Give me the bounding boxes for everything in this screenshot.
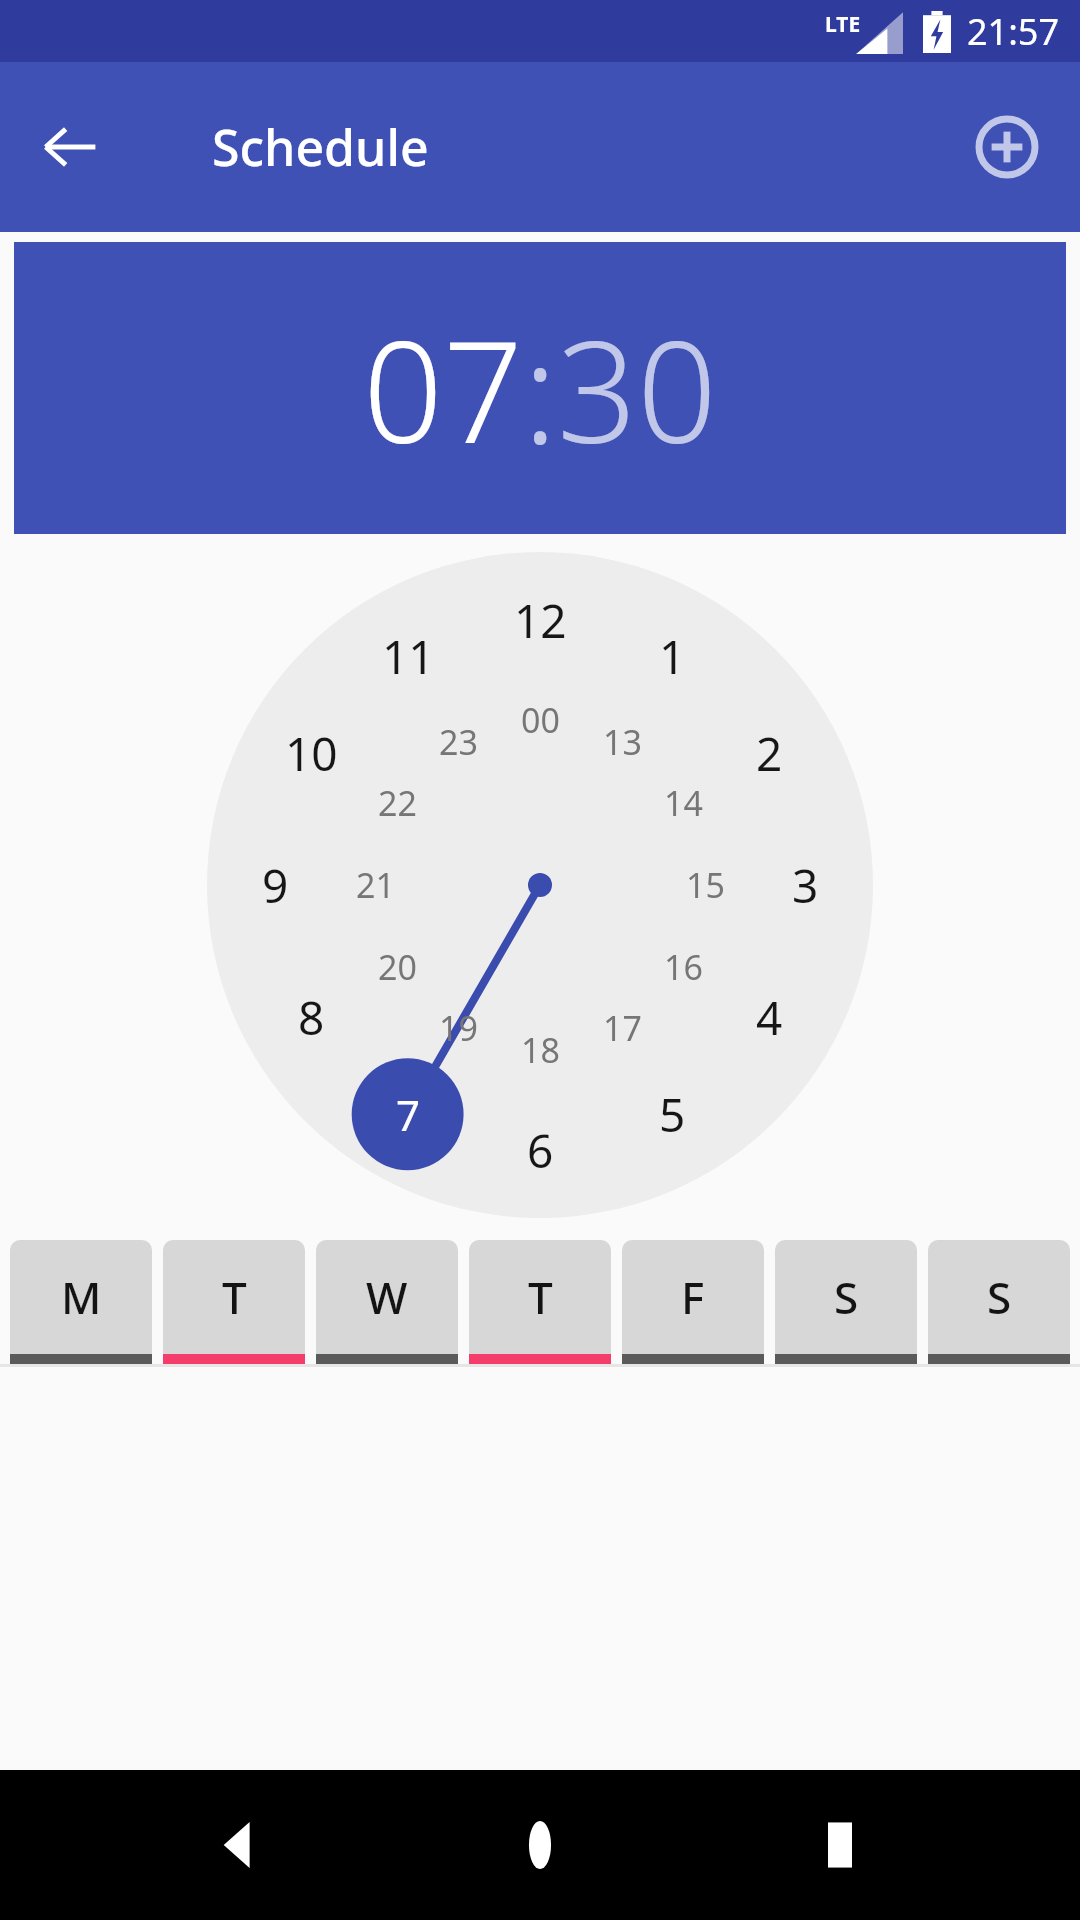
staticText: 2 [756, 722, 783, 785]
staticText: 12 [514, 589, 567, 652]
staticText: T [528, 1267, 553, 1327]
staticText: 5 [659, 1083, 686, 1146]
staticText: 11 [382, 625, 435, 688]
staticText: 18 [521, 1027, 560, 1073]
staticText: 6 [527, 1119, 554, 1182]
button[interactable]: S [928, 1240, 1070, 1364]
staticText: 23 [439, 719, 478, 765]
staticText: 13 [603, 719, 642, 765]
staticText: LTE [825, 10, 861, 39]
staticText: 3 [792, 854, 819, 917]
button[interactable]: Back [30, 107, 110, 187]
button[interactable]: T [163, 1240, 305, 1364]
staticText: 16 [664, 944, 703, 990]
staticText: 7 [396, 1086, 421, 1143]
button[interactable]: F [622, 1240, 764, 1364]
button[interactable]: T [469, 1240, 611, 1364]
button[interactable]: Back [180, 1785, 300, 1905]
staticText: 1 [659, 625, 686, 688]
staticText: 4 [756, 986, 783, 1049]
staticText: 15 [686, 862, 725, 908]
button[interactable]: M [10, 1240, 152, 1364]
button[interactable]: W [316, 1240, 458, 1364]
button[interactable]: 07:30 [14, 242, 1066, 534]
staticText: T [222, 1267, 247, 1327]
staticText: M [61, 1267, 102, 1327]
staticText: F [681, 1267, 705, 1327]
button[interactable]: S [775, 1240, 917, 1364]
staticText: 21:57 [967, 7, 1060, 56]
button[interactable]: Add schedule [964, 104, 1050, 190]
staticText: 22 [378, 780, 417, 826]
button[interactable]: Recent apps [780, 1785, 900, 1905]
staticText: 20 [378, 944, 417, 990]
staticText: 07:30 [363, 293, 717, 484]
staticText: 8 [298, 986, 325, 1049]
staticText: Schedule [212, 113, 429, 181]
staticText: S [834, 1267, 859, 1327]
staticText: 21 [356, 862, 395, 908]
staticText: 14 [664, 780, 703, 826]
staticText: W [366, 1267, 408, 1327]
staticText: 17 [603, 1005, 642, 1051]
staticText: 9 [262, 854, 289, 917]
staticText: 10 [285, 722, 338, 785]
button[interactable]: Home [480, 1785, 600, 1905]
staticText: 00 [521, 697, 560, 743]
staticText: S [987, 1267, 1012, 1327]
staticText: 19 [439, 1005, 478, 1051]
